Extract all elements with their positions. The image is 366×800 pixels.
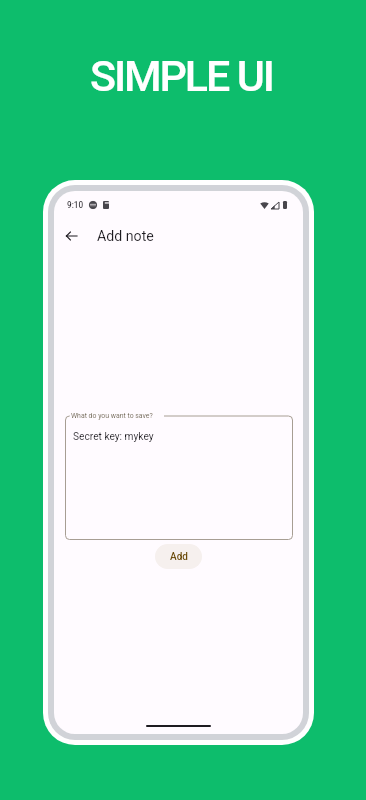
staticText: Add xyxy=(170,551,188,563)
button[interactable]: Back xyxy=(56,221,86,251)
staticText: 9:10 xyxy=(67,200,84,210)
staticText: Add note xyxy=(97,228,154,245)
staticText: What do you want to save? xyxy=(71,412,153,420)
staticText: Secret key: mykey xyxy=(73,431,154,443)
staticText: SIMPLE UI xyxy=(90,51,273,101)
button[interactable]: What do you want to save? xyxy=(65,408,293,540)
button[interactable]: Add xyxy=(155,544,202,569)
